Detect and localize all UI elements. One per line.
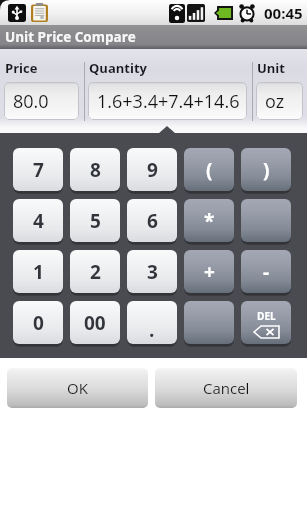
staticText: 00 <box>84 310 106 336</box>
staticText: 0 <box>33 310 44 336</box>
staticText: DEL <box>257 309 276 323</box>
staticText: 1.6+3.4+7.4+14.6 <box>97 89 240 114</box>
button[interactable]: 5 <box>70 199 120 242</box>
button[interactable]: OK <box>7 368 148 408</box>
button[interactable]: . <box>127 301 177 344</box>
staticText: ( <box>206 157 213 183</box>
button[interactable]: - <box>241 250 291 293</box>
button[interactable]: 8 <box>70 148 120 191</box>
button[interactable]: 4 <box>13 199 63 242</box>
staticText: * <box>204 208 215 234</box>
staticText: 4 <box>33 208 44 234</box>
button[interactable]: 2 <box>70 250 120 293</box>
button[interactable]: 00 <box>70 301 120 344</box>
button[interactable]: Cancel <box>155 368 297 408</box>
staticText: 9 <box>147 157 158 183</box>
staticText: 6 <box>147 208 158 234</box>
button[interactable]: ) <box>241 148 291 191</box>
button[interactable]: + <box>184 250 234 293</box>
staticText: Price <box>5 59 38 77</box>
button[interactable]: 6 <box>127 199 177 242</box>
staticText: oz <box>265 89 285 114</box>
button[interactable]: 3 <box>127 250 177 293</box>
staticText: 80.0 <box>13 89 49 114</box>
staticText: Unit Price Compare <box>5 28 136 46</box>
button[interactable]: Key <box>241 199 291 242</box>
button[interactable]: 1 <box>13 250 63 293</box>
staticText: 1 <box>33 259 44 285</box>
staticText: + <box>204 259 215 285</box>
staticText: 8 <box>90 157 101 183</box>
staticText: 5 <box>90 208 101 234</box>
button[interactable]: * <box>184 199 234 242</box>
button[interactable]: 1.6+3.4+7.4+14.6 <box>88 82 247 120</box>
staticText: 3 <box>147 259 158 285</box>
button[interactable]: 9 <box>127 148 177 191</box>
button[interactable]: Key <box>184 301 234 344</box>
button[interactable]: 0 <box>13 301 63 344</box>
staticText: - <box>263 259 270 285</box>
button[interactable]: 7 <box>13 148 63 191</box>
button[interactable]: ( <box>184 148 234 191</box>
staticText: ) <box>263 157 270 183</box>
button[interactable]: Delete <box>241 301 291 344</box>
staticText: Unit <box>257 59 285 77</box>
staticText: . <box>149 317 155 343</box>
staticText: Cancel <box>203 378 250 398</box>
staticText: OK <box>67 378 88 398</box>
staticText: 7 <box>33 157 44 183</box>
staticText: 00:45 <box>264 3 303 23</box>
staticText: Quantity <box>89 59 147 77</box>
staticText: 2 <box>90 259 101 285</box>
button[interactable]: 80.0 <box>4 82 79 120</box>
button[interactable]: oz <box>256 82 303 120</box>
